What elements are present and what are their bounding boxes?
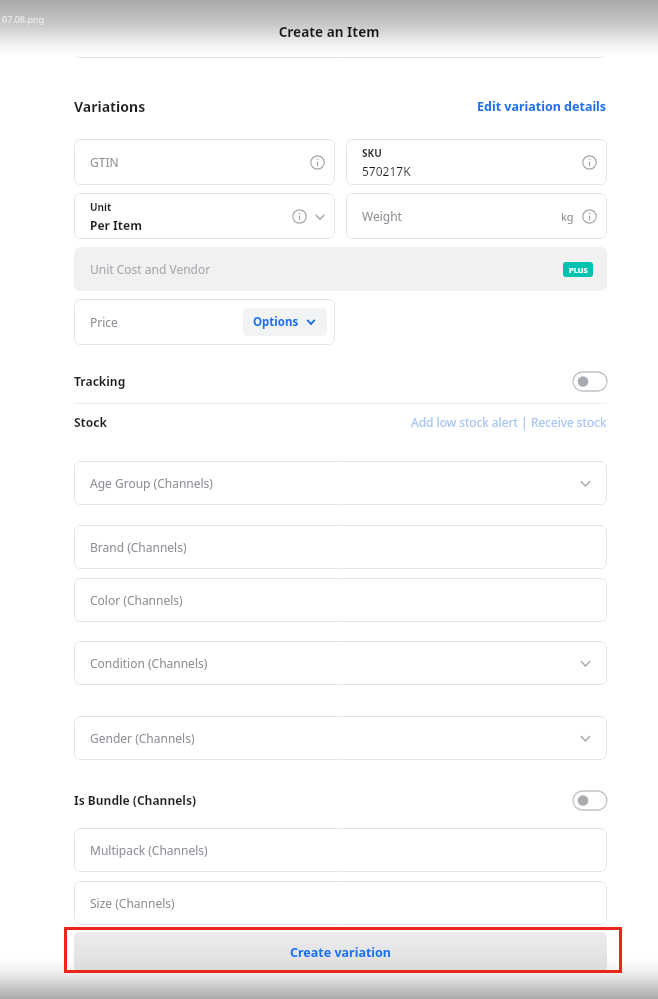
- staticText: PLUS: [569, 265, 588, 275]
- button[interactable]: Toggle: [573, 372, 607, 391]
- staticText: Receive stock: [531, 414, 607, 430]
- button[interactable]: Info: [292, 209, 307, 224]
- button[interactable]: Weight: [346, 193, 607, 239]
- button[interactable]: Options: [243, 308, 327, 336]
- staticText: Size (Channels): [90, 895, 175, 911]
- staticText: GTIN: [90, 154, 119, 170]
- staticText: Per Item: [90, 217, 142, 233]
- button[interactable]: Color (Channels): [74, 578, 607, 622]
- staticText: Weight: [362, 208, 402, 224]
- staticText: Condition (Channels): [90, 655, 208, 671]
- button[interactable]: Unit Cost and Vendor: [74, 247, 607, 291]
- staticText: Brand (Channels): [90, 539, 187, 555]
- staticText: Create variation: [290, 944, 391, 961]
- staticText: kg: [561, 209, 574, 224]
- button[interactable]: Variations: [74, 94, 224, 118]
- button[interactable]: Edit variation details: [457, 94, 607, 118]
- button[interactable]: Multipack (Channels): [74, 828, 607, 872]
- staticText: |: [518, 414, 531, 430]
- button[interactable]: Size (Channels): [74, 881, 607, 925]
- button[interactable]: Info: [582, 209, 597, 224]
- staticText: Unit: [90, 200, 112, 214]
- staticText: Tracking: [74, 373, 126, 389]
- staticText: 07.08.png: [2, 13, 45, 25]
- staticText: Multipack (Channels): [90, 842, 208, 858]
- staticText: Stock: [74, 414, 107, 430]
- button[interactable]: Age Group (Channels): [74, 461, 607, 505]
- staticText: Gender (Channels): [90, 730, 195, 746]
- staticText: SKU: [362, 146, 382, 160]
- staticText: Price: [90, 314, 118, 330]
- staticText: Is Bundle (Channels): [74, 792, 197, 808]
- button[interactable]: Create variation: [74, 932, 607, 972]
- button[interactable]: Gender (Channels): [74, 716, 607, 760]
- button[interactable]: Unit: [74, 193, 335, 239]
- button[interactable]: Info: [310, 155, 325, 170]
- button[interactable]: GTIN: [74, 139, 335, 185]
- staticText: Create an Item: [0, 23, 658, 41]
- button[interactable]: Brand (Channels): [74, 525, 607, 569]
- staticText: Options: [253, 314, 299, 330]
- staticText: Variations: [74, 97, 146, 116]
- button[interactable]: Tracking: [74, 368, 607, 394]
- button[interactable]: Is Bundle (Channels): [74, 787, 607, 813]
- staticText: Edit variation details: [477, 98, 607, 115]
- button[interactable]: Add low stock alert: [411, 414, 518, 430]
- staticText: Color (Channels): [90, 592, 183, 608]
- button[interactable]: Receive stock: [531, 414, 607, 430]
- button[interactable]: Stock: [74, 414, 107, 430]
- staticText: Add low stock alert: [411, 414, 518, 430]
- staticText: Age Group (Channels): [90, 475, 213, 491]
- button[interactable]: Toggle: [573, 791, 607, 810]
- button[interactable]: Condition (Channels): [74, 641, 607, 685]
- button[interactable]: SKU: [346, 139, 607, 185]
- staticText: Unit Cost and Vendor: [90, 261, 211, 277]
- button[interactable]: Price: [74, 299, 335, 345]
- staticText: 570217K: [362, 163, 411, 179]
- button[interactable]: Info: [582, 155, 597, 170]
